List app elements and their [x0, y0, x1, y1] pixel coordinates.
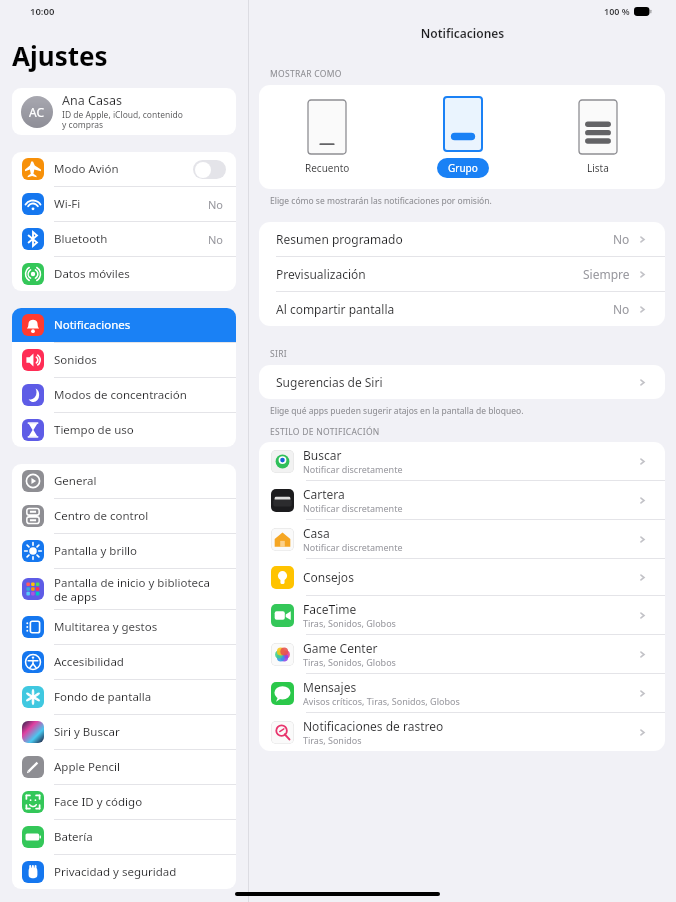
button[interactable]: Multitarea y gestos — [12, 610, 236, 644]
button[interactable]: Fondo de pantalla — [12, 680, 236, 714]
button[interactable]: FaceTime — [259, 596, 665, 634]
button[interactable]: AC — [12, 88, 236, 135]
staticText: Lista — [587, 161, 609, 175]
staticText: Elige cómo se mostrarán las notificacion… — [270, 195, 492, 207]
staticText: Sugerencias de Siri — [276, 374, 637, 390]
staticText: Game Center — [303, 640, 378, 656]
staticText: Siri y Buscar — [54, 724, 226, 740]
staticText: General — [54, 473, 226, 489]
staticText: No — [613, 231, 630, 247]
button[interactable]: Mensajes — [259, 674, 665, 712]
staticText: Ajustes — [12, 38, 108, 73]
button[interactable]: Modo Avión — [12, 152, 236, 186]
button[interactable]: Siri y Buscar — [12, 715, 236, 749]
button[interactable]: Sonidos — [12, 343, 236, 377]
staticText: Recuento — [305, 161, 350, 175]
button[interactable]: Sugerencias de Siri — [259, 365, 665, 399]
button[interactable]: Casa — [259, 520, 665, 558]
staticText: Tiempo de uso — [54, 422, 226, 438]
staticText: Notificaciones de rastreo — [303, 718, 444, 734]
staticText: Privacidad y seguridad — [54, 864, 226, 880]
button[interactable]: Consejos — [259, 559, 665, 595]
staticText: Face ID y código — [54, 794, 226, 810]
button[interactable]: Al compartir pantalla — [259, 292, 665, 326]
button[interactable]: Notificaciones — [12, 308, 236, 342]
button[interactable]: Pantalla de inicio y biblioteca de apps — [12, 569, 236, 609]
staticText: Resumen programado — [276, 231, 613, 247]
staticText: Elige qué apps pueden sugerir atajos en … — [270, 405, 524, 417]
staticText: MOSTRAR COMO — [270, 68, 342, 80]
staticText: Notificar discretamente — [303, 541, 403, 553]
staticText: Buscar — [303, 447, 342, 463]
button[interactable]: General — [12, 464, 236, 498]
staticText: Tiras, Sonidos, Globos — [303, 656, 396, 668]
staticText: Modo Avión — [54, 161, 193, 177]
staticText: Avisos críticos, Tiras, Sonidos, Globos — [303, 695, 460, 707]
staticText: Ana Casas — [62, 92, 122, 109]
staticText: Cartera — [303, 486, 345, 502]
staticText: Al compartir pantalla — [276, 301, 613, 317]
button[interactable]: Modos de concentración — [12, 378, 236, 412]
staticText: Apple Pencil — [54, 759, 226, 775]
staticText: AC — [29, 104, 45, 120]
staticText: Mensajes — [303, 679, 357, 695]
button[interactable]: Lista — [530, 85, 665, 189]
staticText: Notificar discretamente — [303, 502, 403, 514]
button[interactable]: Accesibilidad — [12, 645, 236, 679]
staticText: 100 % — [604, 5, 630, 17]
staticText: Notificaciones — [249, 25, 676, 41]
button[interactable]: Grupo — [395, 85, 530, 189]
button[interactable]: Centro de control — [12, 499, 236, 533]
staticText: Fondo de pantalla — [54, 689, 226, 705]
button[interactable]: Wi-Fi — [12, 187, 236, 221]
button[interactable]: Modo Avión — [193, 160, 226, 179]
staticText: Sonidos — [54, 352, 226, 368]
button[interactable]: Game Center — [259, 635, 665, 673]
staticText: Accesibilidad — [54, 654, 226, 670]
staticText: Previsualización — [276, 266, 583, 282]
staticText: Tiras, Sonidos — [303, 734, 362, 746]
staticText: Notificar discretamente — [303, 463, 403, 475]
staticText: Batería — [54, 829, 226, 845]
staticText: Datos móviles — [54, 266, 226, 282]
staticText: ESTILO DE NOTIFICACIÓN — [270, 426, 380, 438]
button[interactable]: Previsualización — [259, 257, 665, 291]
staticText: ID de Apple, iCloud, contenido y compras — [62, 109, 183, 131]
button[interactable]: Recuento — [259, 85, 395, 189]
staticText: Pantalla y brillo — [54, 543, 226, 559]
staticText: SIRI — [270, 348, 287, 360]
button[interactable]: Notificaciones de rastreo — [259, 713, 665, 751]
staticText: Pantalla de inicio y biblioteca de apps — [54, 575, 226, 604]
staticText: Bluetooth — [54, 231, 208, 247]
staticText: Multitarea y gestos — [54, 619, 226, 635]
button[interactable]: Apple Pencil — [12, 750, 236, 784]
staticText: Centro de control — [54, 508, 226, 524]
staticText: Modos de concentración — [54, 387, 226, 403]
staticText: Notificaciones — [54, 317, 226, 333]
button[interactable]: Privacidad y seguridad — [12, 855, 236, 889]
button[interactable]: Face ID y código — [12, 785, 236, 819]
staticText: FaceTime — [303, 601, 357, 617]
staticText: No — [613, 301, 630, 317]
staticText: No — [208, 232, 224, 247]
staticText: Grupo — [448, 161, 478, 175]
button[interactable]: Datos móviles — [12, 257, 236, 291]
staticText: No — [208, 197, 224, 212]
button[interactable]: Bluetooth — [12, 222, 236, 256]
button[interactable]: Resumen programado — [259, 222, 665, 256]
staticText: Wi-Fi — [54, 196, 208, 212]
staticText: Casa — [303, 525, 330, 541]
button[interactable]: Batería — [12, 820, 236, 854]
button[interactable]: Pantalla y brillo — [12, 534, 236, 568]
button[interactable]: Buscar — [259, 442, 665, 480]
button[interactable]: Cartera — [259, 481, 665, 519]
staticText: 10:00 — [30, 5, 55, 18]
button[interactable]: Tiempo de uso — [12, 413, 236, 447]
staticText: Tiras, Sonidos, Globos — [303, 617, 396, 629]
staticText: Consejos — [303, 569, 354, 585]
staticText: Siempre — [583, 266, 630, 282]
